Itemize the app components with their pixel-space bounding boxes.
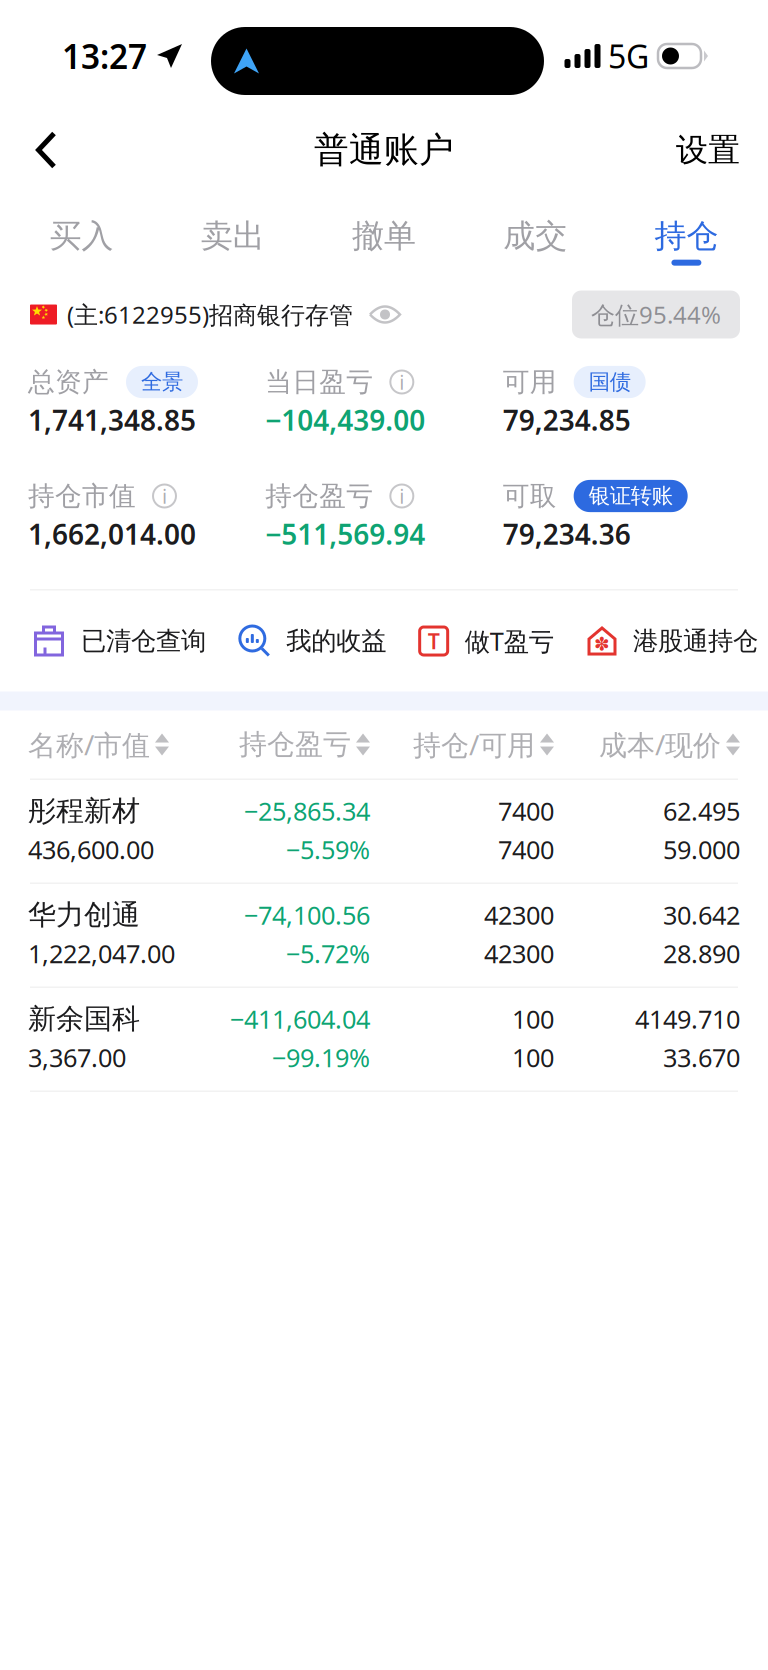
- button[interactable]: 仓位95.44%: [572, 291, 740, 338]
- staticText: 可取: [503, 480, 557, 512]
- staticText: i: [162, 483, 167, 509]
- button[interactable]: 华力创通: [0, 884, 768, 986]
- button[interactable]: 设置: [652, 116, 768, 196]
- staticText: 79,234.85: [503, 401, 631, 439]
- staticText: 买入: [50, 216, 114, 256]
- staticText: −411,604.04: [230, 1002, 370, 1036]
- staticText: 持仓市值: [28, 480, 136, 512]
- staticText: 33.670: [663, 1041, 740, 1074]
- button[interactable]: 撤单: [308, 208, 460, 279]
- staticText: 港股通持仓: [633, 625, 758, 656]
- button[interactable]: 彤程新材: [0, 780, 768, 882]
- staticText: 新余国科: [28, 1002, 140, 1036]
- button[interactable]: ✽: [587, 625, 758, 656]
- staticText: −25,865.34: [244, 794, 370, 828]
- staticText: 当日盈亏: [265, 366, 373, 398]
- button[interactable]: 返回: [0, 117, 80, 194]
- staticText: 持仓盈亏: [265, 480, 373, 512]
- staticText: i: [399, 483, 404, 509]
- staticText: 撤单: [352, 216, 416, 256]
- staticText: 仓位95.44%: [591, 299, 721, 330]
- button[interactable]: 新余国科: [0, 988, 768, 1090]
- staticText: 3,367.00: [28, 1041, 126, 1074]
- button[interactable]: 持仓/可用: [370, 710, 554, 778]
- staticText: 卖出: [201, 216, 265, 256]
- staticText: 彤程新材: [28, 794, 140, 828]
- staticText: 7400: [498, 833, 554, 866]
- button[interactable]: 我的收益: [239, 625, 386, 656]
- staticText: 我的收益: [286, 625, 386, 656]
- staticText: 已清仓查询: [81, 625, 206, 656]
- staticText: 普通账户: [314, 129, 454, 171]
- staticText: 30.642: [663, 898, 740, 932]
- staticText: 1,222,047.00: [28, 937, 175, 970]
- button[interactable]: 卖出: [157, 208, 308, 279]
- button[interactable]: 买入: [6, 208, 157, 279]
- staticText: 国债: [589, 369, 631, 395]
- staticText: −104,439.00: [265, 401, 425, 439]
- staticText: 42300: [484, 937, 554, 970]
- staticText: 5G: [608, 35, 649, 77]
- button[interactable]: 名称/市值: [28, 710, 203, 778]
- button[interactable]: 持仓: [611, 208, 762, 279]
- staticText: 银证转账: [589, 483, 673, 509]
- staticText: 42300: [484, 898, 554, 932]
- staticText: 436,600.00: [28, 833, 154, 866]
- staticText: T: [428, 627, 440, 655]
- staticText: 28.890: [663, 937, 740, 970]
- staticText: 持仓/可用: [413, 726, 535, 763]
- staticText: 全景: [141, 369, 183, 395]
- staticText: 4149.710: [635, 1002, 740, 1036]
- staticText: 13:27: [62, 34, 147, 78]
- staticText: 持仓: [654, 216, 718, 256]
- button[interactable]: 成交: [460, 208, 611, 279]
- staticText: 7400: [498, 794, 554, 828]
- button[interactable]: 显示/隐藏金额: [353, 297, 401, 331]
- staticText: 持仓盈亏: [239, 727, 351, 762]
- staticText: 华力创通: [28, 898, 140, 932]
- button[interactable]: 国债: [574, 366, 646, 398]
- staticText: −5.59%: [286, 833, 370, 866]
- staticText: 62.495: [663, 794, 740, 828]
- staticText: (主:6122955)招商银行存管: [67, 299, 353, 330]
- button[interactable]: 银证转账: [574, 480, 688, 512]
- button[interactable]: 成本/现价: [554, 710, 740, 778]
- staticText: 59.000: [663, 833, 740, 866]
- staticText: ✽: [594, 633, 610, 655]
- staticText: 100: [512, 1002, 554, 1036]
- button[interactable]: 已清仓查询: [34, 625, 206, 656]
- staticText: −99.19%: [272, 1041, 370, 1074]
- staticText: 100: [512, 1041, 554, 1074]
- staticText: 1,662,014.00: [28, 515, 196, 553]
- staticText: −511,569.94: [265, 515, 425, 553]
- staticText: 可用: [503, 366, 557, 398]
- staticText: 1,741,348.85: [28, 401, 196, 439]
- staticText: 79,234.36: [503, 515, 631, 553]
- button[interactable]: T: [420, 624, 554, 658]
- staticText: 成交: [503, 216, 567, 256]
- staticText: −5.72%: [286, 937, 370, 970]
- button[interactable]: 全景: [126, 366, 198, 398]
- staticText: 成本/现价: [599, 726, 721, 763]
- staticText: 名称/市值: [28, 726, 150, 763]
- staticText: −74,100.56: [244, 898, 370, 932]
- staticText: i: [399, 369, 404, 395]
- staticText: 总资产: [28, 366, 109, 398]
- button[interactable]: 持仓盈亏: [203, 710, 370, 778]
- staticText: 设置: [676, 130, 740, 170]
- staticText: 做T盈亏: [465, 624, 554, 658]
